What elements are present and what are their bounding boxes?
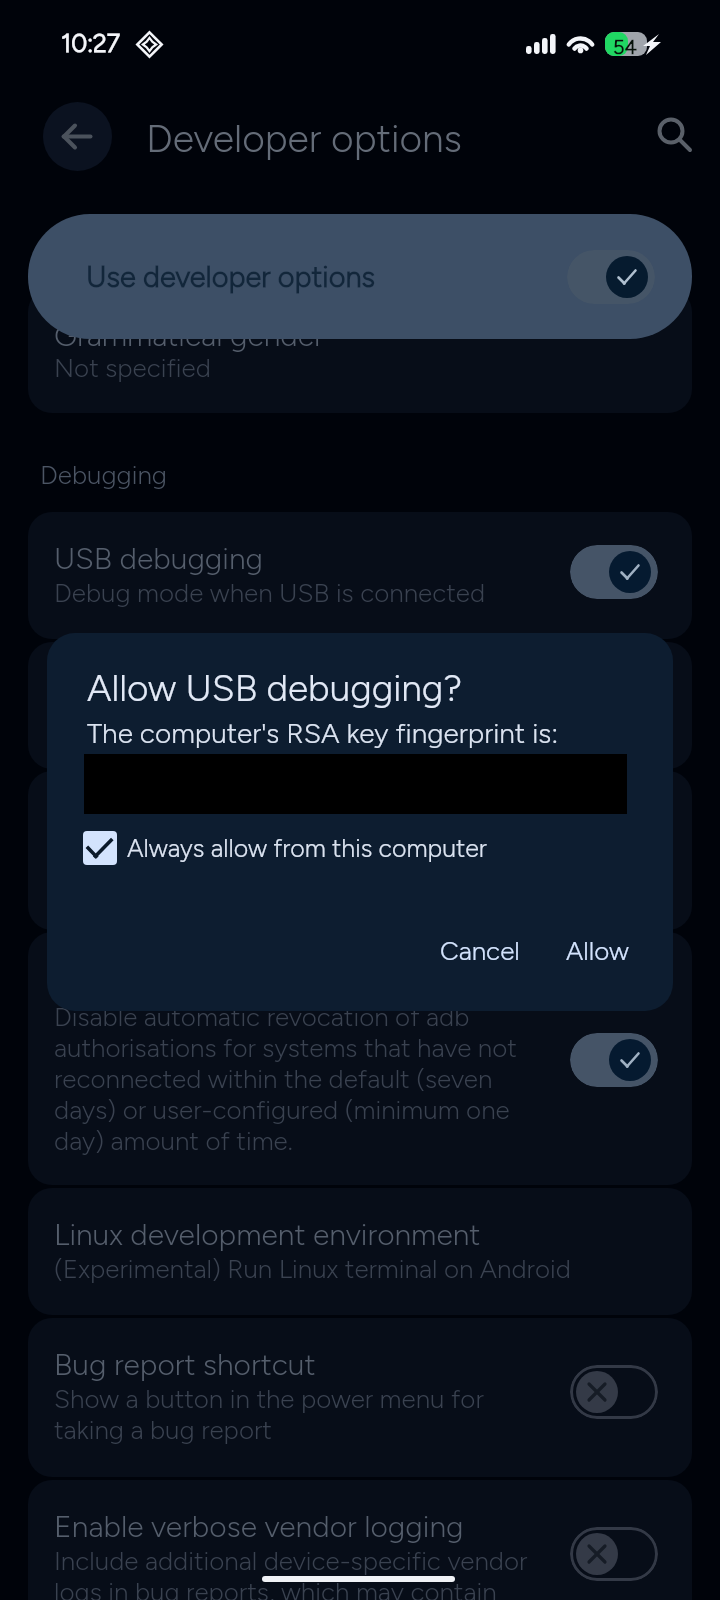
button[interactable]: Search [646, 106, 700, 160]
staticText: Include additional device-specific vendo… [54, 1545, 528, 1600]
button[interactable]: Enable verbose vendor logging [28, 1480, 692, 1600]
button[interactable]: Use developer options [28, 214, 692, 339]
button[interactable]: Cancel [420, 921, 540, 980]
button[interactable]: Switch off [570, 1527, 658, 1581]
button[interactable] [28, 642, 692, 769]
staticText: The computer's RSA key fingerprint is: [87, 716, 558, 750]
staticText: (Experimental) Run Linux terminal on And… [54, 1253, 571, 1284]
staticText: Show a button in the power menu for taki… [54, 1383, 484, 1445]
button[interactable]: Allow [546, 921, 649, 980]
staticText: Linux development environment [54, 1216, 481, 1252]
staticText: Debug mode when USB is connected [54, 577, 486, 608]
staticText: Allow USB debugging? [87, 666, 462, 710]
button[interactable]: Use developer options [567, 250, 655, 304]
staticText: Use developer options [86, 259, 376, 294]
staticText: Developer options [146, 115, 462, 162]
button[interactable]: Linux development environment [28, 1188, 692, 1315]
staticText: USB debugging [54, 540, 264, 576]
staticText: Enable verbose vendor logging [54, 1508, 464, 1544]
staticText: Disable adb authorisation timeout [54, 952, 501, 988]
staticText: Not specified [54, 352, 211, 383]
button[interactable]: Always allow from this computer [77, 822, 487, 874]
staticText: Debugging [40, 459, 167, 490]
staticText: 54 [613, 35, 637, 59]
staticText: Bug report shortcut [54, 1346, 316, 1382]
button[interactable]: Switch on [570, 1033, 658, 1087]
button[interactable]: Bug report shortcut [28, 1318, 692, 1477]
button[interactable]: USB debugging [28, 512, 692, 639]
staticText: 10:27 [61, 28, 121, 58]
button[interactable] [28, 771, 692, 930]
staticText: Disable automatic revocation of adb auth… [54, 1001, 517, 1156]
staticText: Cancel [440, 935, 520, 966]
button[interactable]: Disable adb authorisation timeout [28, 932, 692, 1185]
staticText: Always allow from this computer [127, 833, 487, 863]
button[interactable]: Back [43, 102, 112, 171]
staticText: Grammatical gender [54, 317, 324, 353]
button[interactable]: Switch on [570, 545, 658, 599]
button[interactable]: Grammatical gender [28, 288, 692, 413]
button[interactable]: Switch off [570, 1365, 658, 1419]
staticText: Allow [566, 935, 629, 966]
